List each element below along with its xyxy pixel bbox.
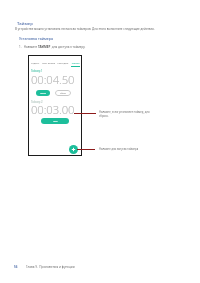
staticText: Таймер	[17, 21, 33, 27]
button[interactable]: Мир. время	[41, 62, 56, 67]
button[interactable]: Секундом.	[56, 62, 70, 67]
staticText: В устройстве можно установить несколько …	[15, 27, 155, 31]
staticText: ТАЙМЕР	[38, 45, 51, 49]
staticText: Секундом.	[57, 62, 69, 65]
staticText: Пауза	[40, 92, 46, 95]
staticText: 00:04.50	[31, 72, 75, 87]
staticText: Установка таймера	[19, 36, 54, 41]
staticText: 1. Нажмите	[19, 45, 38, 49]
button[interactable]: Пауза	[36, 90, 50, 96]
staticText: Таймер 2	[31, 100, 43, 104]
staticText: 56	[14, 265, 18, 269]
staticText: для доступа к таймеру.	[51, 45, 86, 49]
button[interactable]: Добавить таймер	[69, 145, 78, 154]
staticText: Таймер 1	[31, 69, 43, 73]
button[interactable]: Будиль.	[29, 62, 41, 67]
button[interactable]: Сброс	[55, 90, 71, 96]
staticText: Сброс	[60, 92, 67, 95]
button[interactable]: Таймер	[70, 62, 81, 67]
staticText: 00:03.00	[31, 102, 75, 117]
staticText: Будиль.	[31, 62, 40, 65]
staticText: Пуск	[53, 120, 58, 123]
staticText: Глава 9. Приложения и функции	[26, 265, 75, 269]
staticText: Таймер	[71, 62, 80, 65]
staticText: Нажмите для запуска таймера	[99, 147, 139, 151]
staticText: Нажмите, если установлен таймер, для сбр…	[99, 110, 150, 118]
staticText: Мир. время	[42, 62, 55, 65]
button[interactable]: Пуск	[41, 118, 69, 124]
